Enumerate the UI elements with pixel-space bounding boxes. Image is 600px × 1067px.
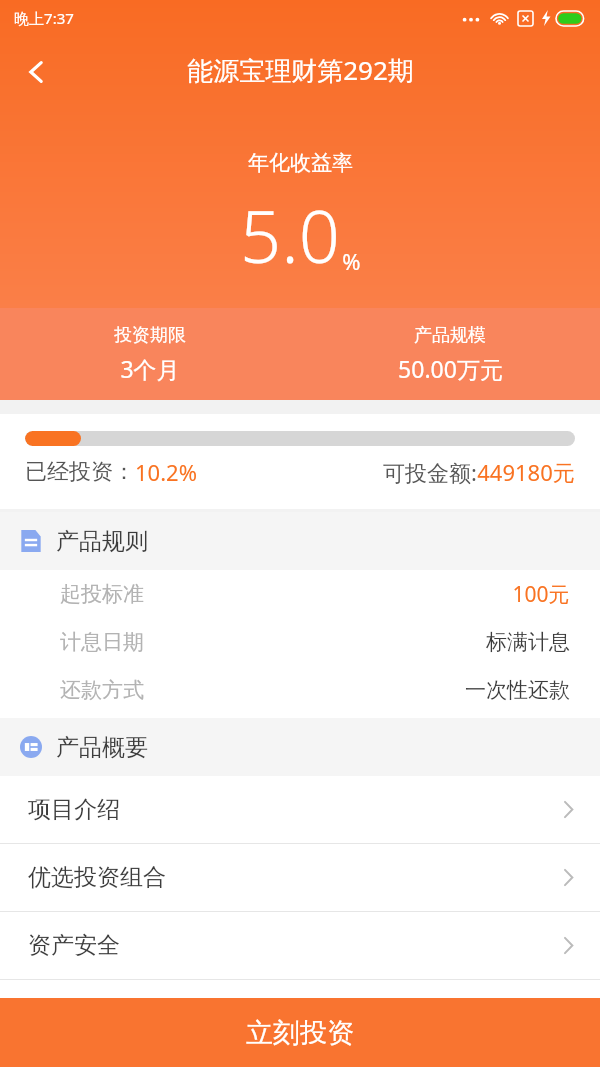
staticText: 3个月 [120, 353, 180, 384]
staticText: 产品规则 [56, 527, 148, 556]
staticText: 5.0 [240, 186, 340, 284]
staticText: 一次性还款 [465, 677, 570, 703]
button[interactable]: 优选投资组合 [0, 844, 600, 911]
staticText: % [342, 246, 361, 276]
staticText: 449180元 [477, 457, 575, 487]
staticText: 10.2% [135, 457, 197, 487]
staticText: 计息日期 [60, 629, 144, 655]
staticText: 投资期限 [114, 324, 186, 347]
staticText: 100元 [512, 580, 570, 609]
button[interactable]: Back [8, 44, 64, 100]
button[interactable]: 计息日期 [0, 618, 600, 666]
staticText: 标满计息 [486, 629, 570, 655]
button[interactable]: 资产安全 [0, 912, 600, 979]
button[interactable]: 起投标准 [0, 570, 600, 618]
staticText: 资产安全 [28, 931, 120, 960]
staticText: 产品概要 [56, 733, 148, 762]
staticText: 可投金额: [383, 457, 477, 487]
staticText: 还款方式 [60, 677, 144, 703]
staticText: 年化收益率 [248, 150, 353, 176]
staticText: 晚上7:37 [14, 8, 74, 28]
staticText: 能源宝理财第292期 [187, 52, 414, 88]
button[interactable]: 还款方式 [0, 666, 600, 714]
button[interactable]: 项目介绍 [0, 776, 600, 843]
staticText: 已经投资： [25, 458, 135, 486]
button[interactable]: 立刻投资 [0, 998, 600, 1067]
staticText: 起投标准 [60, 581, 144, 607]
staticText: 50.00万元 [398, 353, 503, 384]
staticText: 优选投资组合 [28, 863, 166, 892]
staticText: 立刻投资 [246, 1016, 354, 1050]
staticText: 产品规模 [414, 324, 486, 347]
staticText: 项目介绍 [28, 795, 120, 824]
